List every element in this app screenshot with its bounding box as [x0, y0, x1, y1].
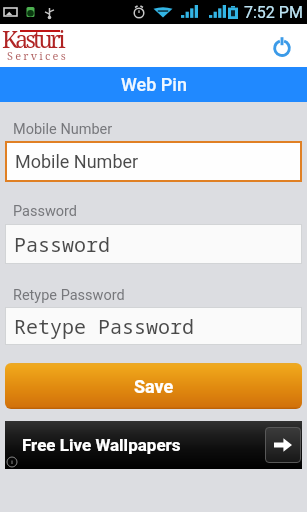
- staticText: Save: [134, 376, 174, 397]
- button[interactable]: Free Live Wallpapers: [5, 421, 302, 469]
- button[interactable]: Mobile Number: [5, 141, 302, 182]
- staticText: Web Pin: [121, 74, 187, 95]
- staticText: 7:52 PM: [244, 3, 303, 22]
- staticText: Mobile Number: [13, 121, 113, 138]
- staticText: Retype Password: [14, 313, 194, 340]
- staticText: Kasturi: [2, 23, 63, 54]
- button[interactable]: Retype Password: [5, 307, 302, 345]
- button[interactable]: Save: [5, 363, 302, 409]
- staticText: Password: [13, 203, 78, 220]
- staticText: Mobile Number: [15, 151, 139, 172]
- staticText: Free Live Wallpapers: [22, 435, 181, 455]
- button[interactable]: Password: [5, 224, 302, 264]
- staticText: Password: [14, 231, 110, 258]
- button[interactable]: Power: [267, 31, 297, 61]
- staticText: Services: [7, 48, 68, 63]
- staticText: Retype Password: [13, 287, 125, 304]
- button[interactable]: Open ad: [265, 427, 301, 463]
